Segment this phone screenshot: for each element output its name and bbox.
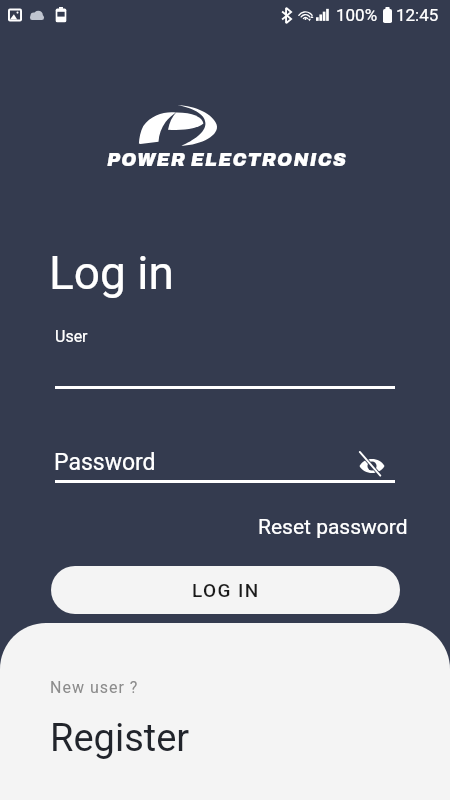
staticText: New user ? bbox=[50, 678, 139, 697]
staticText: POWER ELECTRONICS bbox=[107, 150, 348, 170]
staticText: 12:45 bbox=[396, 5, 439, 25]
staticText: Reset password bbox=[258, 515, 408, 540]
staticText: User bbox=[55, 327, 88, 346]
button[interactable]: LOG IN bbox=[51, 566, 400, 614]
staticText: Register bbox=[50, 716, 190, 761]
button[interactable]: New user ? bbox=[0, 623, 450, 800]
staticText: LOG IN bbox=[192, 579, 260, 601]
staticText: Password bbox=[54, 449, 156, 476]
button[interactable]: Reset password bbox=[249, 509, 417, 546]
button[interactable]: Show password bbox=[353, 447, 391, 485]
staticText: Log in bbox=[49, 246, 174, 300]
staticText: 100% bbox=[336, 5, 378, 25]
